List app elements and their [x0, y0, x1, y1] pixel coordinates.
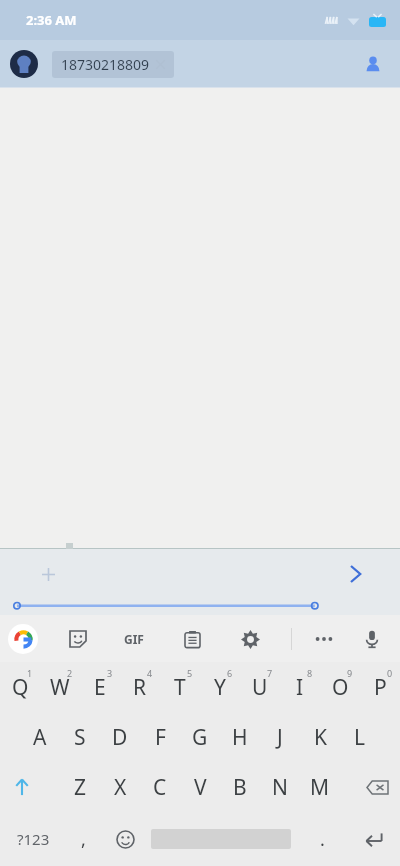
button[interactable]: Stickers: [62, 623, 94, 655]
button[interactable]: K: [300, 712, 340, 762]
staticText: 6: [227, 667, 233, 679]
button[interactable]: ?123: [4, 812, 62, 866]
button[interactable]: T: [160, 662, 200, 712]
staticText: 5: [187, 667, 193, 679]
button[interactable]: J: [260, 712, 300, 762]
staticText: Q: [12, 673, 29, 702]
button[interactable]: F: [140, 712, 180, 762]
button[interactable]: A: [20, 712, 60, 762]
button[interactable]: Add contact: [356, 47, 390, 81]
button[interactable]: Google search: [8, 624, 38, 654]
staticText: O: [332, 673, 349, 702]
button[interactable]: X: [100, 762, 140, 812]
staticText: H: [232, 723, 248, 752]
staticText: 3: [107, 667, 113, 679]
button[interactable]: Clipboard: [176, 623, 208, 655]
staticText: 18730218809: [61, 55, 150, 74]
button[interactable]: Send: [338, 557, 372, 591]
button[interactable]: U: [240, 662, 280, 712]
staticText: ,: [81, 827, 86, 852]
button[interactable]: Y: [200, 662, 240, 712]
staticText: 0: [387, 667, 393, 679]
button[interactable]: O: [320, 662, 360, 712]
staticText: A: [33, 723, 47, 752]
button[interactable]: M: [300, 762, 340, 812]
button[interactable]: Contact avatar: [10, 50, 38, 78]
staticText: GIF: [124, 631, 144, 647]
staticText: 1: [27, 667, 33, 679]
staticText: J: [277, 723, 283, 752]
button[interactable]: Enter: [348, 812, 400, 866]
button[interactable]: Q: [0, 662, 40, 712]
button[interactable]: Voice input: [356, 623, 388, 655]
staticText: 7: [267, 667, 273, 679]
staticText: 9: [347, 667, 353, 679]
button[interactable]: W: [40, 662, 80, 712]
button[interactable]: G: [180, 712, 220, 762]
staticText: 8: [307, 667, 313, 679]
staticText: X: [114, 773, 127, 802]
staticText: G: [192, 723, 208, 752]
button[interactable]: D: [100, 712, 140, 762]
staticText: .: [320, 827, 325, 852]
staticText: V: [194, 773, 207, 802]
staticText: L: [354, 723, 366, 752]
button[interactable]: GIF: [116, 621, 152, 657]
staticText: K: [314, 723, 327, 752]
button[interactable]: More options: [306, 621, 342, 657]
staticText: Y: [214, 673, 226, 702]
staticText: ?123: [17, 829, 50, 849]
button[interactable]: V: [180, 762, 220, 812]
button[interactable]: Emoji: [104, 812, 146, 866]
button[interactable]: .: [302, 812, 342, 866]
staticText: 2: [67, 667, 73, 679]
button[interactable]: I: [280, 662, 320, 712]
button[interactable]: Backspace: [354, 762, 400, 812]
staticText: W: [50, 673, 70, 702]
staticText: N: [272, 773, 288, 802]
button[interactable]: B: [220, 762, 260, 812]
button[interactable]: Add attachment: [34, 560, 62, 588]
button[interactable]: E: [80, 662, 120, 712]
staticText: D: [112, 723, 128, 752]
staticText: 2:36 AM: [26, 11, 77, 29]
staticText: T: [174, 673, 186, 702]
staticText: B: [233, 773, 247, 802]
button[interactable]: 18730218809: [52, 51, 174, 78]
staticText: 4: [147, 667, 153, 679]
staticText: S: [74, 723, 86, 752]
button[interactable]: L: [340, 712, 380, 762]
staticText: I: [296, 673, 304, 702]
button[interactable]: C: [140, 762, 180, 812]
button[interactable]: Settings: [234, 623, 266, 655]
staticText: R: [133, 673, 147, 702]
staticText: E: [94, 673, 106, 702]
button[interactable]: P: [360, 662, 400, 712]
staticText: C: [153, 773, 167, 802]
button[interactable]: R: [120, 662, 160, 712]
staticText: U: [252, 673, 268, 702]
button[interactable]: H: [220, 712, 260, 762]
staticText: F: [155, 723, 166, 752]
staticText: P: [374, 673, 387, 702]
button[interactable]: Shift: [0, 762, 44, 812]
button[interactable]: N: [260, 762, 300, 812]
button[interactable]: S: [60, 712, 100, 762]
button[interactable]: Z: [60, 762, 100, 812]
button[interactable]: ,: [62, 812, 104, 866]
staticText: Z: [74, 773, 87, 802]
staticText: M: [310, 773, 330, 802]
